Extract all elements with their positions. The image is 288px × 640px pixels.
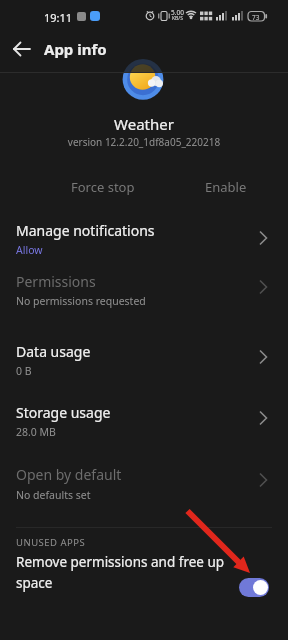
- staticText: Data usage: [16, 342, 91, 361]
- staticText: Weather: [0, 114, 288, 134]
- staticText: No defaults set: [16, 488, 91, 502]
- staticText: Force stop: [71, 178, 135, 196]
- staticText: 5.00: [171, 8, 184, 17]
- staticText: Remove permissions and free up space: [16, 553, 228, 592]
- staticText: Allow: [16, 243, 43, 257]
- staticText: 19:11: [44, 10, 73, 25]
- staticText: Permissions: [16, 272, 96, 291]
- staticText: UNUSED APPS: [16, 536, 86, 549]
- staticText: Storage usage: [16, 403, 111, 422]
- staticText: KB/S: [172, 15, 183, 22]
- staticText: No permissions requested: [16, 294, 146, 308]
- staticText: App info: [44, 39, 107, 59]
- staticText: 28.0 MB: [16, 425, 56, 439]
- staticText: 73: [252, 13, 260, 22]
- staticText: Enable: [205, 178, 247, 196]
- staticText: Open by default: [16, 465, 122, 484]
- staticText: 0 B: [16, 364, 32, 378]
- staticText: Manage notifications: [16, 221, 155, 240]
- staticText: version 12.2.20_1df8a05_220218: [0, 135, 288, 149]
